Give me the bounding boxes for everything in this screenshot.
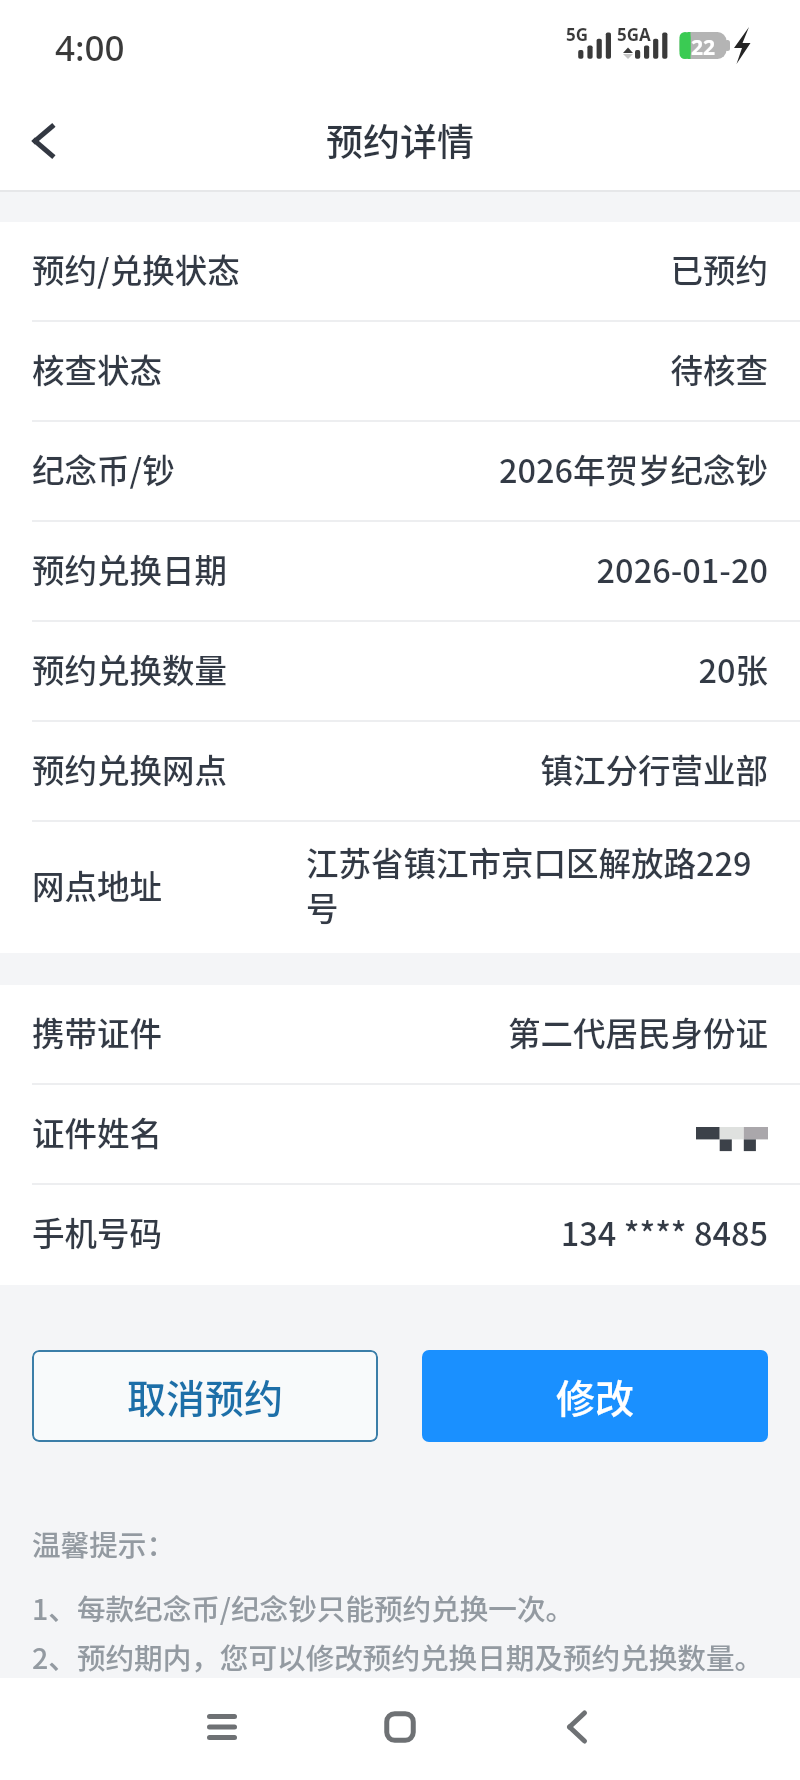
staticText: 预约兑换数量: [32, 645, 228, 692]
staticText: 预约/兑换状态: [32, 245, 240, 292]
button[interactable]: 预约兑换日期: [0, 522, 800, 622]
button[interactable]: Back: [542, 1692, 612, 1762]
staticText: 1、每款纪念币/纪念钞只能预约兑换一次。: [32, 1587, 575, 1628]
button[interactable]: Home: [365, 1692, 435, 1762]
staticText: 核查状态: [32, 345, 163, 392]
staticText: 2、预约期内，您可以修改预约兑换日期及预约兑换数量。: [32, 1636, 764, 1677]
button[interactable]: 携带证件: [0, 985, 800, 1085]
staticText: 4:00: [55, 24, 125, 72]
staticText: 预约兑换网点: [32, 745, 228, 792]
button[interactable]: 预约兑换数量: [0, 622, 800, 722]
staticText: 网点地址: [32, 861, 163, 908]
staticText: 温馨提示：: [32, 1523, 175, 1564]
staticText: 5GA: [617, 23, 651, 46]
button[interactable]: 证件姓名: [0, 1085, 800, 1185]
staticText: 22: [691, 33, 716, 62]
staticText: 预约兑换日期: [32, 545, 228, 592]
button[interactable]: 网点地址: [32, 822, 768, 946]
button[interactable]: 预约/兑换状态: [0, 222, 800, 322]
staticText: 第二代居民身份证: [179, 1008, 768, 1055]
button[interactable]: 修改: [422, 1350, 768, 1442]
staticText: 取消预约: [127, 1368, 284, 1424]
button[interactable]: 预约兑换网点: [0, 722, 800, 822]
staticText: 携带证件: [32, 1008, 163, 1055]
button[interactable]: 取消预约: [32, 1350, 378, 1442]
button[interactable]: 手机号码: [0, 1185, 800, 1285]
button[interactable]: 纪念币/钞: [0, 422, 800, 522]
staticText: 2026-01-20: [244, 545, 768, 592]
staticText: 江苏省镇江市京口区解放路229号: [306, 838, 768, 930]
staticText: 预约详情: [326, 113, 474, 167]
button[interactable]: Back: [12, 108, 76, 172]
button[interactable]: Recent apps: [187, 1692, 257, 1762]
staticText: 修改: [556, 1368, 635, 1424]
staticText: 纪念币/钞: [32, 445, 175, 492]
staticText: 待核查: [179, 345, 768, 392]
staticText: 手机号码: [32, 1208, 163, 1255]
staticText: 镇江分行营业部: [244, 745, 768, 792]
staticText: 证件姓名: [32, 1108, 163, 1155]
button[interactable]: 核查状态: [0, 322, 800, 422]
staticText: 2026年贺岁纪念钞: [191, 445, 768, 492]
staticText: 134 **** 8485: [179, 1208, 768, 1255]
staticText: 5G: [566, 23, 589, 46]
staticText: 已预约: [256, 245, 768, 292]
staticText: 20张: [244, 645, 768, 692]
